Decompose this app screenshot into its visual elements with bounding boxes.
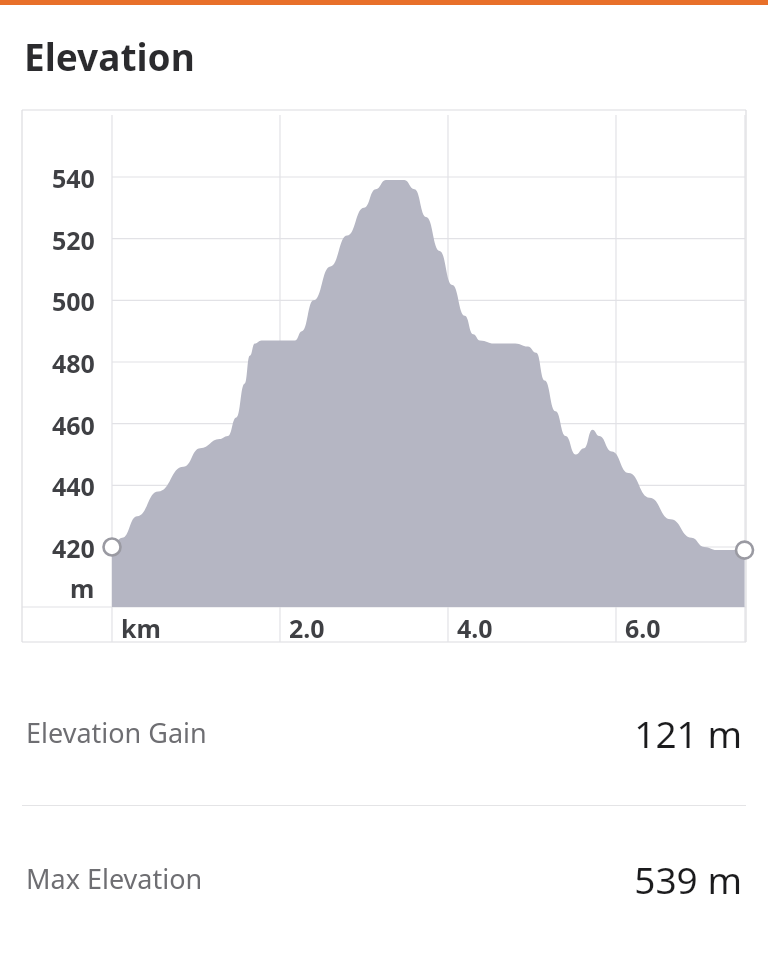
- staticText: 520: [52, 223, 95, 257]
- staticText: 440: [52, 469, 95, 503]
- staticText: Elevation Gain: [26, 714, 207, 751]
- staticText: 480: [52, 346, 95, 380]
- staticText: 539 m: [634, 854, 742, 904]
- other: Elevation profile chart: [0, 5, 768, 961]
- staticText: 500: [52, 284, 95, 318]
- staticText: 6.0: [625, 611, 661, 645]
- staticText: 2.0: [289, 611, 325, 645]
- staticText: km: [121, 611, 161, 645]
- staticText: 540: [52, 161, 95, 195]
- staticText: Max Elevation: [26, 860, 203, 897]
- staticText: 420: [52, 531, 95, 565]
- staticText: 4.0: [457, 611, 493, 645]
- staticText: 460: [52, 408, 95, 442]
- staticText: m: [70, 571, 95, 605]
- staticText: Elevation: [24, 31, 195, 81]
- button[interactable]: Elevation Gain: [0, 660, 768, 805]
- staticText: 121 m: [634, 708, 742, 758]
- button[interactable]: Max Elevation: [0, 806, 768, 951]
